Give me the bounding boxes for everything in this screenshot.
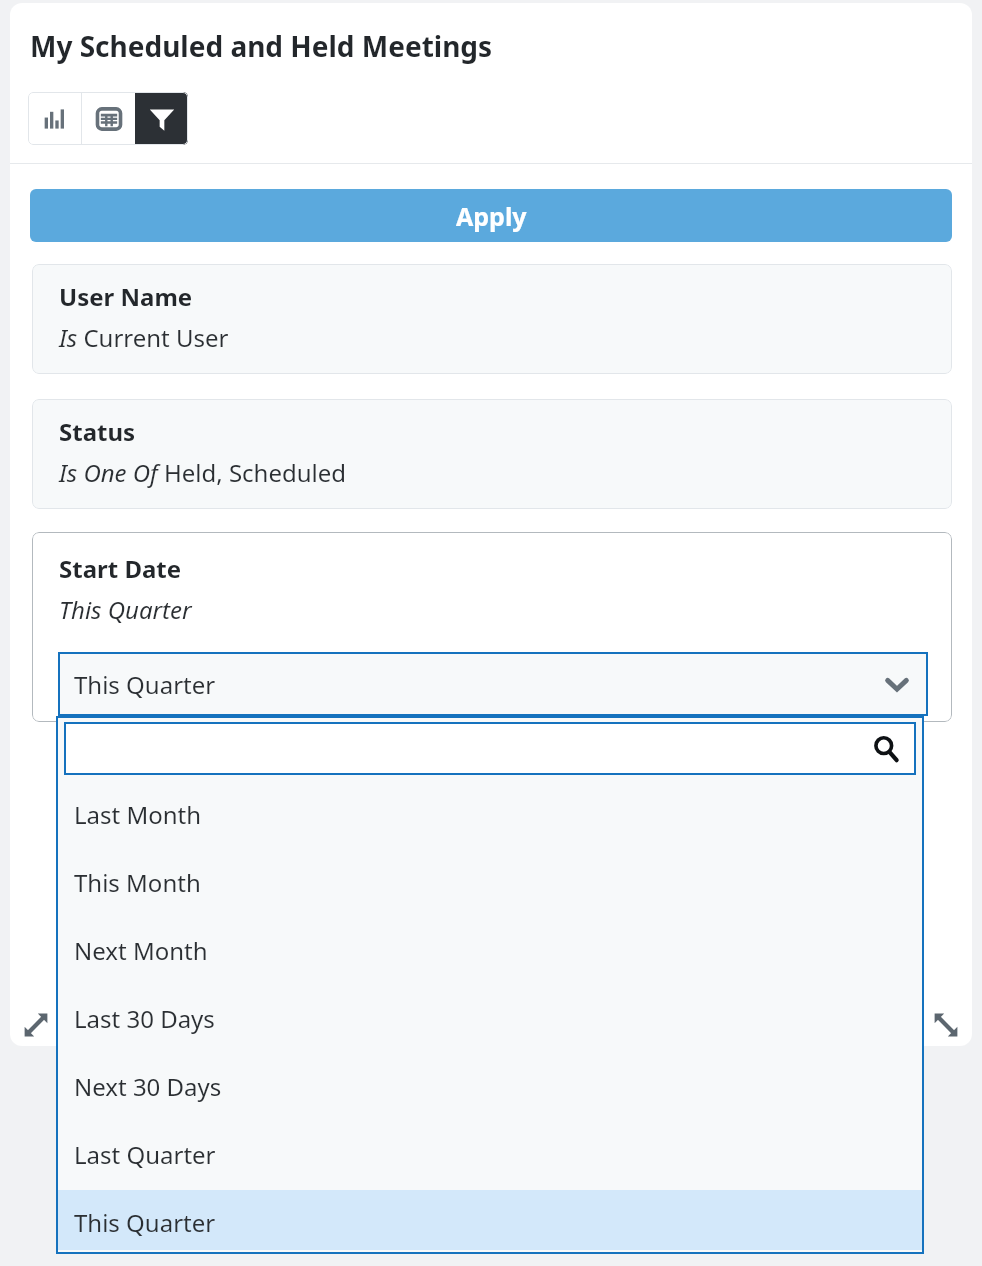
button[interactable]: Resize panel xyxy=(928,1007,964,1043)
staticText: Next Month xyxy=(74,934,208,967)
button[interactable]: Search options xyxy=(64,722,916,775)
button[interactable]: Filter xyxy=(135,92,188,145)
staticText: Status xyxy=(59,415,136,448)
button[interactable]: Apply xyxy=(30,189,952,242)
button[interactable]: User Name xyxy=(32,264,952,374)
button[interactable]: Last 30 Days xyxy=(56,986,924,1054)
staticText: Next 30 Days xyxy=(74,1070,222,1103)
staticText: My Scheduled and Held Meetings xyxy=(30,27,493,65)
staticText: This Quarter xyxy=(74,1206,216,1239)
button[interactable]: Last Month xyxy=(56,782,924,850)
button[interactable]: Chart view xyxy=(28,92,81,145)
staticText: Apply xyxy=(456,199,527,233)
staticText: User Name xyxy=(59,280,193,313)
staticText: Is One Of Held, Scheduled xyxy=(59,456,347,489)
staticText: Last 30 Days xyxy=(74,1002,215,1035)
staticText: This Quarter xyxy=(59,593,192,626)
staticText: Is Current User xyxy=(59,321,229,354)
button[interactable]: Status xyxy=(32,399,952,509)
button[interactable]: Resize panel xyxy=(18,1007,54,1043)
staticText: Last Quarter xyxy=(74,1138,216,1171)
button[interactable]: Table view xyxy=(82,92,135,145)
button[interactable]: This Month xyxy=(56,850,924,918)
button[interactable]: Start Date xyxy=(32,532,952,722)
button[interactable]: Next Month xyxy=(56,918,924,986)
staticText: This Month xyxy=(74,866,201,899)
button[interactable]: This Quarter xyxy=(58,652,928,716)
staticText: This Quarter xyxy=(74,668,216,701)
staticText: Start Date xyxy=(59,552,182,585)
staticText: Last Month xyxy=(74,798,202,831)
button[interactable]: Next 30 Days xyxy=(56,1054,924,1122)
button[interactable]: This Quarter xyxy=(56,1190,924,1250)
button[interactable]: Last Quarter xyxy=(56,1122,924,1190)
